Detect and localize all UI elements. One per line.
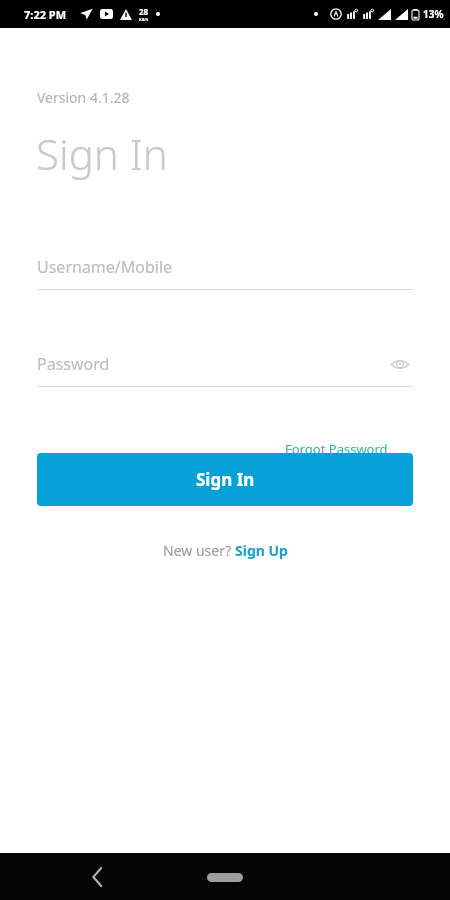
- staticText: 7:22 PM: [24, 7, 67, 22]
- button[interactable]: Forgot Password: [283, 438, 390, 460]
- staticText: Forgot Password: [285, 440, 388, 458]
- staticText: New user?: [163, 541, 235, 560]
- staticText: Username/Mobile: [37, 256, 173, 278]
- button[interactable]: Sign In: [37, 453, 413, 506]
- button[interactable]: Password: [37, 348, 413, 387]
- staticText: Sign Up: [235, 541, 288, 560]
- staticText: Sign In: [196, 468, 255, 491]
- staticText: 13%: [423, 7, 444, 21]
- staticText: KB/S: [139, 17, 149, 22]
- staticText: Password: [37, 353, 110, 375]
- button[interactable]: Back: [77, 857, 117, 897]
- staticText: 28: [139, 6, 149, 17]
- button[interactable]: Username/Mobile: [37, 251, 413, 290]
- button[interactable]: Home: [195, 866, 255, 888]
- button[interactable]: Show password: [387, 351, 413, 377]
- button[interactable]: Sign Up: [235, 541, 288, 560]
- staticText: Version 4.1.28: [37, 88, 130, 107]
- staticText: Sign In: [36, 125, 168, 182]
